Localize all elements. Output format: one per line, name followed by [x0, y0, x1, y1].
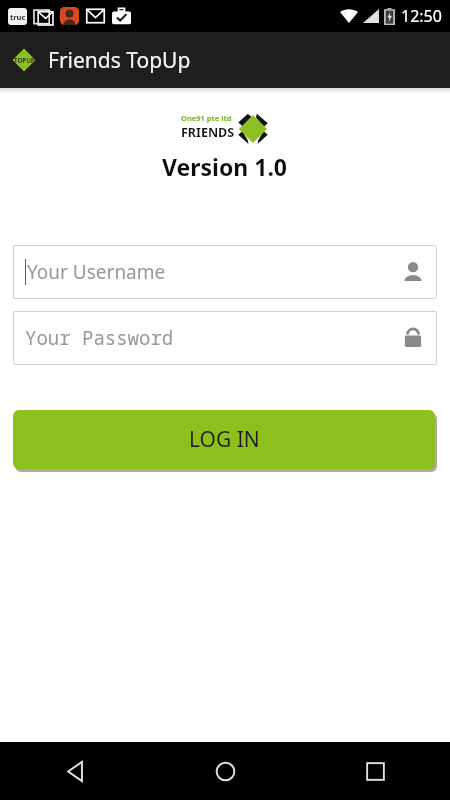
other: Username	[401, 260, 425, 284]
button[interactable]: Your Username	[13, 245, 437, 299]
staticText: LOG IN	[189, 425, 260, 454]
staticText: FRIENDS TOPUP	[181, 124, 269, 145]
staticText: 12:50	[401, 5, 442, 27]
staticText: Your Password	[25, 325, 174, 351]
staticText: Your Username	[27, 259, 166, 285]
button[interactable]: Recent apps	[300, 742, 450, 800]
button[interactable]: Your Password	[13, 311, 437, 365]
button[interactable]: Back	[0, 742, 150, 800]
button[interactable]: Home	[150, 742, 300, 800]
other: Friends TopUp logo	[11, 47, 37, 73]
staticText: TOPUP	[14, 56, 35, 64]
staticText: One91 pte ltd	[181, 113, 232, 123]
other: Password	[401, 326, 425, 350]
staticText: Friends TopUp	[48, 46, 191, 75]
staticText: Version 1.0	[162, 151, 288, 182]
staticText: truc	[10, 12, 26, 22]
button[interactable]: LOG IN	[13, 410, 435, 469]
